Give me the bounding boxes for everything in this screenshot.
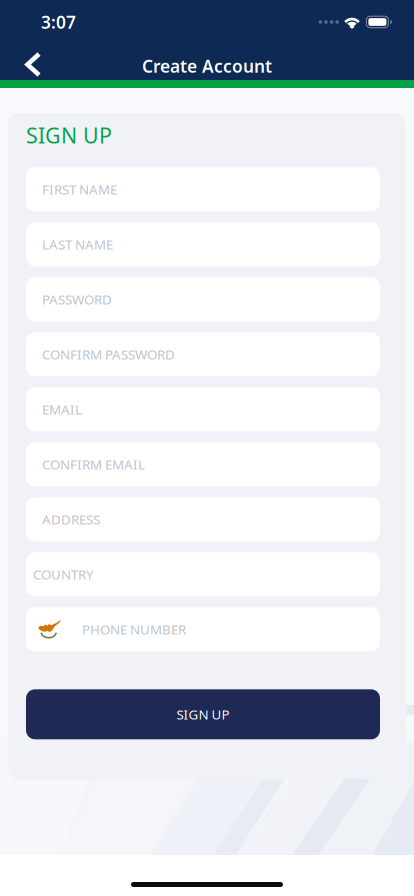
button[interactable]: LAST NAME [26, 222, 380, 266]
staticText: CONFIRM EMAIL [42, 455, 145, 473]
button[interactable]: EMAIL [26, 387, 380, 431]
button[interactable]: FIRST NAME [26, 167, 380, 211]
staticText: EMAIL [42, 400, 82, 418]
button[interactable]: COUNTRY [26, 552, 380, 596]
button[interactable]: CONFIRM EMAIL [26, 442, 380, 486]
button[interactable]: ADDRESS [26, 497, 380, 541]
button[interactable]: CONFIRM PASSWORD [26, 332, 380, 376]
staticText: CONFIRM PASSWORD [42, 345, 175, 363]
staticText: 3:07 [41, 10, 76, 33]
staticText: Create Account [142, 54, 272, 77]
staticText: FIRST NAME [42, 180, 117, 198]
button[interactable]: PASSWORD [26, 277, 380, 321]
staticText: ADDRESS [42, 510, 100, 528]
staticText: PHONE NUMBER [82, 620, 186, 638]
staticText: COUNTRY [33, 565, 94, 583]
button[interactable]: SIGN UP [26, 689, 380, 739]
button[interactable]: Back [0, 41, 55, 82]
staticText: SIGN UP [26, 121, 112, 149]
staticText: LAST NAME [42, 235, 113, 253]
button[interactable]: PHONE NUMBER [26, 607, 380, 651]
staticText: SIGN UP [176, 705, 229, 723]
staticText: PASSWORD [42, 290, 112, 308]
